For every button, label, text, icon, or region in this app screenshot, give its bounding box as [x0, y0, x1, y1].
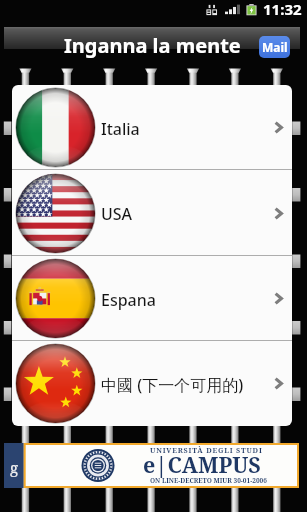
button[interactable]: 中國 (下一个可用的): [12, 341, 292, 426]
button[interactable]: Mail: [259, 36, 290, 58]
staticText: e|CAMPUS: [143, 450, 261, 479]
staticText: 11:32: [263, 0, 302, 19]
staticText: Espana: [101, 289, 156, 311]
button[interactable]: USA: [12, 170, 292, 256]
staticText: UNIVERSITÀ DEGLI STUDI: [150, 445, 263, 455]
staticText: ON LINE-DECRETO MIUR 30-01-2006: [150, 476, 267, 485]
staticText: USA: [101, 203, 133, 225]
button[interactable]: g: [4, 443, 299, 488]
button[interactable]: Espana: [12, 256, 292, 341]
staticText: g: [10, 457, 19, 477]
staticText: Italia: [101, 118, 140, 140]
button[interactable]: Italia: [12, 85, 292, 170]
staticText: 中國 (下一个可用的): [101, 374, 244, 396]
staticText: Mail: [262, 39, 288, 55]
staticText: Inganna la mente: [64, 32, 241, 59]
